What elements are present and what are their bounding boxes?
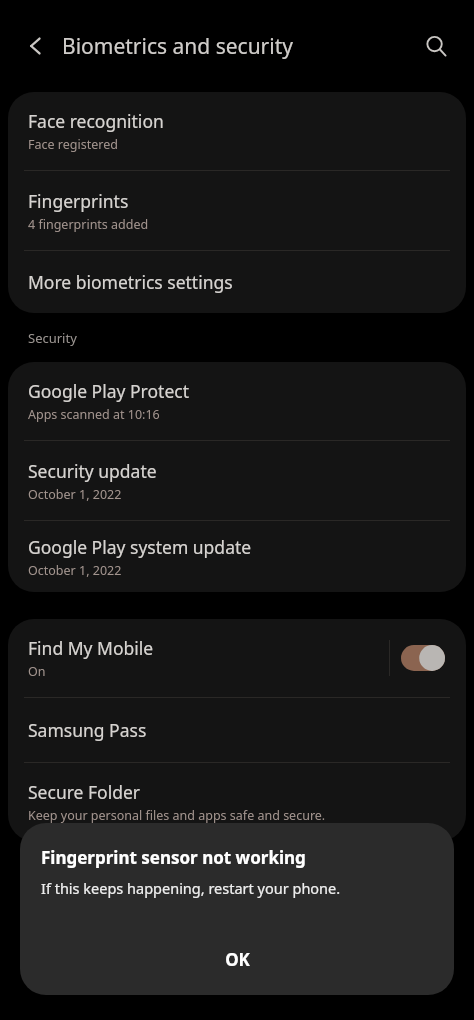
button[interactable]: Secure Folder [8,763,466,841]
button[interactable]: Find My Mobile toggle, on [401,643,445,673]
button[interactable]: Samsung Pass [8,698,466,762]
staticText: Security [28,329,77,347]
staticText: Keep your personal files and apps safe a… [28,807,326,824]
button[interactable]: More biometrics settings [8,251,466,313]
staticText: On [28,663,46,680]
staticText: Google Play system update [28,535,252,559]
staticText: OK [225,948,250,971]
staticText: Google Play Protect [28,379,189,403]
button[interactable]: Security update [8,441,466,520]
staticText: Fingerprints [28,189,129,213]
staticText: Security update [28,459,157,483]
staticText: Biometrics and security [62,32,414,61]
button[interactable]: Face recognition [8,92,466,170]
staticText: If this keeps happening, restart your ph… [41,878,341,898]
staticText: October 1, 2022 [28,562,122,579]
staticText: More biometrics settings [28,270,233,294]
button[interactable]: Google Play Protect [8,362,466,440]
staticText: Secure Folder [28,780,141,804]
staticText: Face registered [28,136,118,153]
button[interactable]: Google Play system update [8,521,466,592]
staticText: Face recognition [28,109,164,133]
staticText: 4 fingerprints added [28,216,149,233]
button[interactable]: Search [414,24,458,68]
button[interactable]: Back [14,24,58,68]
staticText: October 1, 2022 [28,486,122,503]
button[interactable]: Fingerprints [8,171,466,250]
staticText: Find My Mobile [28,636,154,660]
button[interactable]: Find My Mobile [8,619,466,697]
staticText: Apps scanned at 10:16 [28,406,160,423]
button[interactable]: OK [20,931,454,987]
staticText: Samsung Pass [28,718,147,742]
staticText: Fingerprint sensor not working [41,846,306,869]
